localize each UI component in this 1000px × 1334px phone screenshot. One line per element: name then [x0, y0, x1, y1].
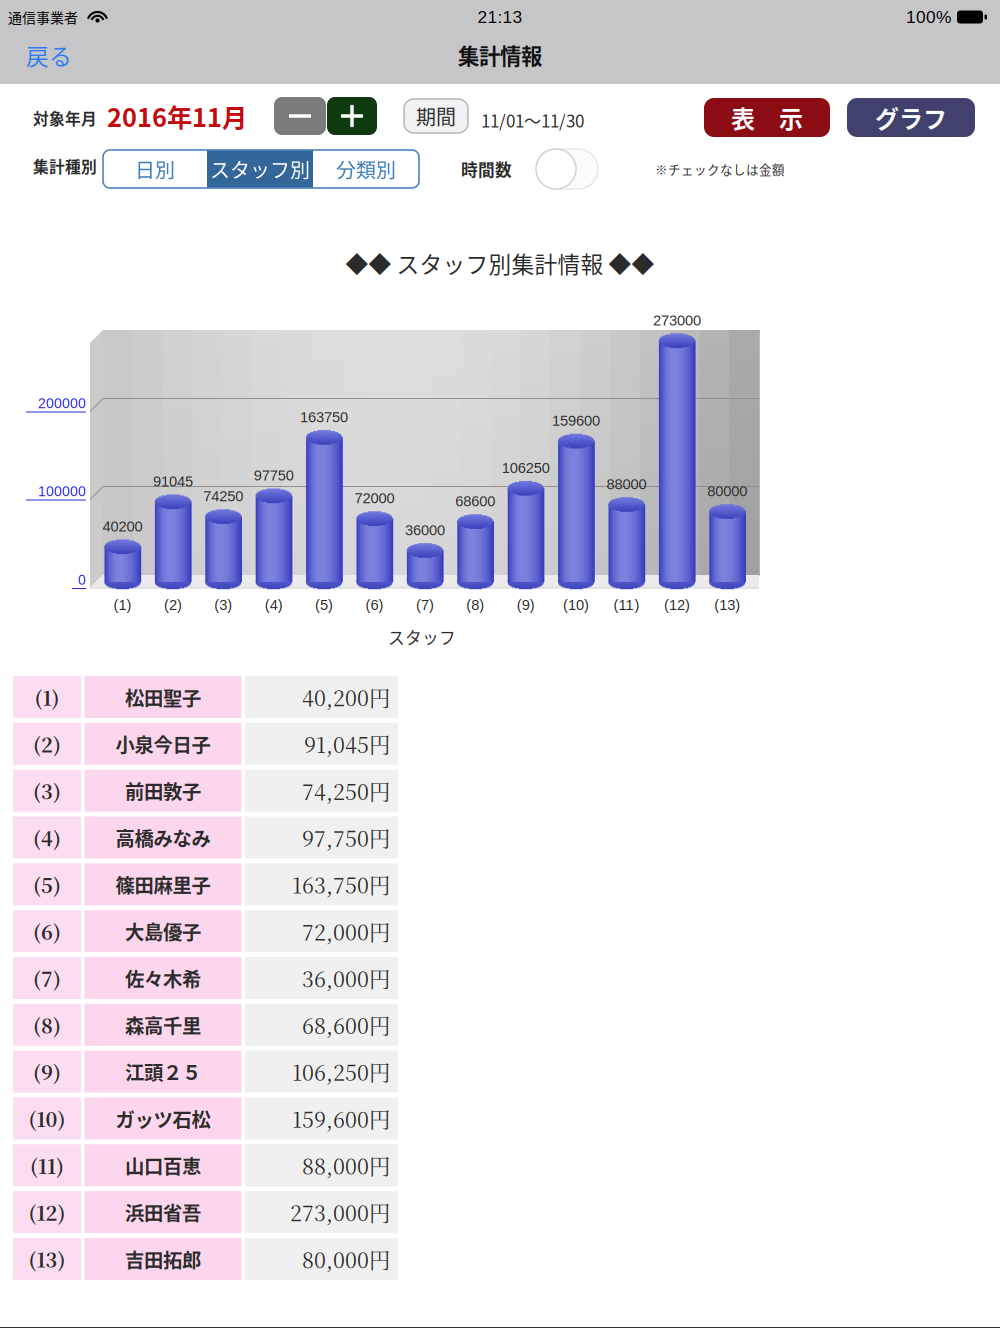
staticText: 分類別	[336, 154, 396, 183]
staticText: 期間	[416, 101, 456, 130]
staticText: (8)	[33, 1010, 61, 1039]
staticText: 68,600円	[302, 1009, 390, 1040]
staticText: 日別	[135, 154, 175, 183]
staticText: (11)	[613, 597, 639, 613]
staticText: 200000	[38, 396, 86, 411]
staticText: (12)	[28, 1198, 65, 1226]
staticText: ※チェックなしは金額	[655, 160, 785, 178]
staticText: 高橋みなみ	[115, 823, 210, 851]
staticText: (13)	[714, 597, 740, 613]
staticText: ガッツ石松	[115, 1104, 210, 1132]
staticText: スタッフ別	[210, 154, 310, 183]
staticText: 大島優子	[125, 917, 201, 945]
staticText: 通信事業者	[8, 7, 78, 27]
button[interactable]: スタッフ別	[207, 150, 313, 188]
staticText: (9)	[33, 1057, 61, 1086]
staticText: 88000	[606, 476, 646, 492]
staticText: 対象年月	[33, 107, 97, 129]
staticText: (3)	[214, 597, 232, 613]
staticText: (2)	[33, 729, 61, 758]
staticText: (6)	[33, 917, 61, 945]
staticText: 40,200円	[302, 682, 390, 712]
staticText: 88,000円	[302, 1150, 390, 1181]
staticText: 前田敦子	[125, 777, 201, 805]
staticText: 91045	[153, 473, 193, 490]
staticText: (3)	[33, 776, 61, 805]
staticText: 0	[78, 572, 86, 588]
button[interactable]: 日別	[103, 150, 207, 188]
staticText: 集計情報	[458, 40, 542, 70]
staticText: 2016年11月	[107, 98, 247, 134]
staticText: (6)	[365, 597, 383, 613]
staticText: 小泉今日子	[115, 730, 210, 758]
staticText: 80,000円	[302, 1244, 390, 1274]
staticText: (4)	[265, 597, 283, 613]
button[interactable]: 分類別	[313, 150, 419, 188]
staticText: 時間数	[461, 157, 512, 181]
staticText: (1)	[113, 597, 131, 613]
staticText: 68600	[455, 493, 495, 509]
staticText: 72000	[354, 490, 394, 506]
staticText: 91,045円	[304, 728, 390, 759]
staticText: (9)	[517, 597, 535, 613]
staticText: (5)	[315, 597, 333, 613]
staticText: 11/01〜11/30	[481, 108, 584, 132]
button[interactable]: 次の月	[327, 97, 377, 135]
staticText: 97,750円	[302, 822, 390, 853]
staticText: 山口百恵	[125, 1151, 201, 1179]
staticText: 163,750円	[292, 869, 390, 900]
staticText: 159600	[552, 413, 600, 429]
staticText: スタッフ	[388, 625, 456, 649]
staticText: (11)	[30, 1151, 64, 1180]
staticText: 159,600円	[292, 1103, 390, 1134]
staticText: 163750	[300, 409, 348, 425]
button[interactable]: 時間数	[536, 149, 598, 189]
staticText: ◆◆ スタッフ別集計情報 ◆◆	[345, 247, 654, 279]
staticText: 40200	[102, 518, 142, 535]
staticText: 100%	[906, 7, 951, 27]
staticText: 江頭２５	[125, 1058, 201, 1086]
staticText: 100000	[38, 484, 86, 499]
staticText: 松田聖子	[125, 683, 201, 711]
staticText: 273,000円	[290, 1197, 390, 1227]
button[interactable]: 期間	[404, 99, 468, 133]
staticText: (1)	[34, 683, 59, 711]
staticText: 36000	[405, 522, 445, 538]
staticText: (7)	[33, 964, 61, 992]
staticText: 97750	[254, 467, 294, 484]
button[interactable]: 戻る	[0, 33, 110, 77]
staticText: (10)	[28, 1104, 65, 1133]
staticText: (5)	[33, 870, 61, 899]
staticText: 273000	[653, 312, 701, 329]
staticText: (12)	[664, 597, 690, 613]
staticText: 森高千里	[125, 1011, 201, 1039]
staticText: 吉田拓郎	[125, 1245, 201, 1273]
staticText: (4)	[33, 823, 61, 852]
staticText: (10)	[563, 597, 589, 613]
staticText: 36,000円	[302, 963, 390, 993]
staticText: 佐々木希	[125, 964, 201, 992]
staticText: (8)	[466, 597, 484, 613]
staticText: (7)	[416, 597, 434, 613]
staticText: 浜田省吾	[125, 1198, 201, 1226]
staticText: 74250	[203, 488, 243, 504]
staticText: 21:13	[477, 7, 522, 27]
staticText: 106250	[502, 460, 550, 476]
staticText: (13)	[28, 1245, 65, 1273]
button[interactable]: グラフ	[847, 98, 975, 137]
staticText: グラフ	[875, 100, 947, 135]
staticText: 106,250円	[292, 1056, 390, 1087]
staticText: 篠田麻里子	[115, 870, 210, 898]
button[interactable]: 表 示	[704, 98, 830, 137]
staticText: 戻る	[26, 39, 72, 71]
staticText: 80000	[707, 483, 747, 499]
staticText: 表 示	[731, 100, 803, 135]
staticText: 72,000円	[302, 916, 390, 946]
staticText: (2)	[164, 597, 182, 613]
staticText: 74,250円	[302, 775, 390, 806]
staticText: 集計種別	[33, 155, 97, 177]
button[interactable]: 前の月	[274, 97, 326, 135]
